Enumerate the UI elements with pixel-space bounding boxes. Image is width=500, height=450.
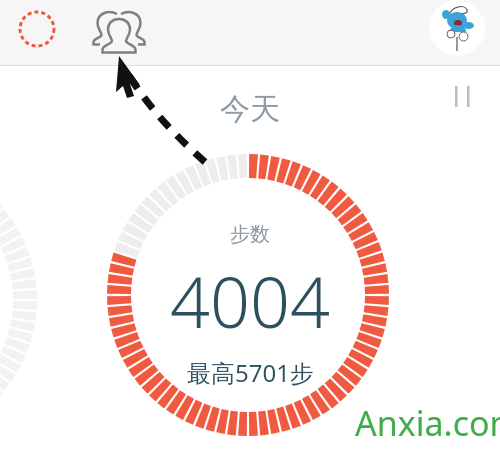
staticText: 4004	[170, 253, 330, 348]
staticText: 最高5701步	[187, 356, 314, 389]
staticText: 今天	[220, 90, 280, 128]
button[interactable]: Profile	[429, 0, 485, 56]
staticText: 步数	[230, 222, 270, 247]
button[interactable]: Friends	[92, 10, 138, 48]
button[interactable]: Activity ring	[19, 11, 55, 47]
button[interactable]: Pause	[446, 81, 476, 111]
staticText: Anxia.com	[355, 400, 500, 446]
